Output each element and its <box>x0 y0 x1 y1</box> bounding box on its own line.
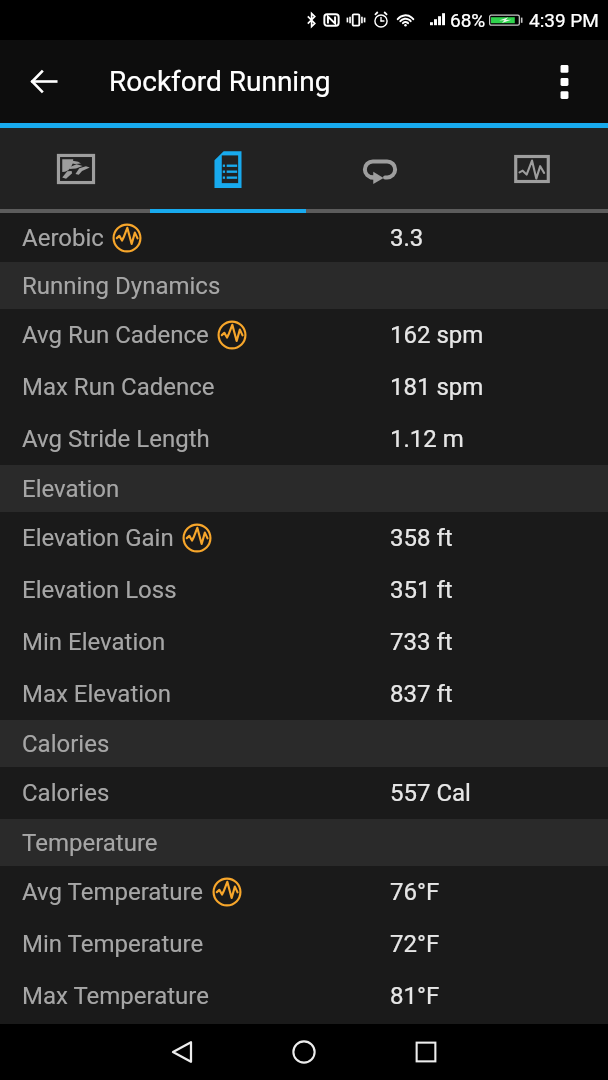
staticText: Avg Temperature <box>22 878 204 906</box>
staticText: Max Elevation <box>22 680 172 708</box>
button[interactable]: Temperature <box>0 819 608 866</box>
staticText: Rockford Running <box>109 65 331 98</box>
button[interactable]: Back <box>0 40 88 123</box>
staticText: Min Temperature <box>22 930 204 958</box>
button[interactable]: Max Temperature <box>0 970 608 1022</box>
staticText: Calories <box>22 779 110 807</box>
button[interactable]: More options <box>520 40 608 123</box>
staticText: Min Elevation <box>22 628 166 656</box>
staticText: 4:39 PM <box>529 9 599 31</box>
button[interactable]: Elevation Loss <box>0 564 608 616</box>
button[interactable]: Elevation <box>0 465 608 512</box>
staticText: Max Run Cadence <box>22 373 215 401</box>
button[interactable]: Max Run Cadence <box>0 361 608 413</box>
staticText: 68% <box>450 9 486 31</box>
button[interactable]: Charts <box>456 128 608 213</box>
button[interactable]: Avg Run Cadence <box>0 309 608 361</box>
button[interactable]: Recents <box>365 1024 487 1080</box>
staticText: Max Temperature <box>22 982 209 1010</box>
button[interactable]: Map <box>0 128 152 213</box>
button[interactable]: Details <box>152 128 304 213</box>
staticText: 72°F <box>390 930 440 958</box>
staticText: 1.12 m <box>390 425 464 453</box>
button[interactable]: Calories <box>0 720 608 767</box>
staticText: 733 ft <box>390 628 453 656</box>
staticText: Temperature <box>22 829 158 857</box>
button[interactable]: Aerobic <box>0 213 608 262</box>
staticText: 358 ft <box>390 524 453 552</box>
button[interactable]: Running Dynamics <box>0 262 608 309</box>
staticText: Elevation <box>22 475 120 503</box>
button[interactable]: Calories <box>0 767 608 819</box>
staticText: Aerobic <box>22 224 104 252</box>
button[interactable]: Back <box>121 1024 243 1080</box>
staticText: 557 Cal <box>390 779 471 807</box>
staticText: 81°F <box>390 982 440 1010</box>
button[interactable]: Min Elevation <box>0 616 608 668</box>
button[interactable]: Laps <box>304 128 456 213</box>
staticText: 837 ft <box>390 680 453 708</box>
staticText: Elevation Loss <box>22 576 177 604</box>
staticText: 76°F <box>390 878 440 906</box>
staticText: Avg Run Cadence <box>22 321 209 349</box>
button[interactable]: Max Elevation <box>0 668 608 720</box>
staticText: Avg Stride Length <box>22 425 210 453</box>
button[interactable]: Min Temperature <box>0 918 608 970</box>
button[interactable]: Avg Temperature <box>0 866 608 918</box>
staticText: Running Dynamics <box>22 272 221 300</box>
button[interactable]: Elevation Gain <box>0 512 608 564</box>
staticText: Calories <box>22 730 110 758</box>
button[interactable]: Avg Stride Length <box>0 413 608 465</box>
staticText: 162 spm <box>390 321 484 349</box>
staticText: 3.3 <box>390 224 424 252</box>
staticText: 181 spm <box>390 373 484 401</box>
staticText: 351 ft <box>390 576 453 604</box>
staticText: Elevation Gain <box>22 524 174 552</box>
button[interactable]: Home <box>243 1024 365 1080</box>
